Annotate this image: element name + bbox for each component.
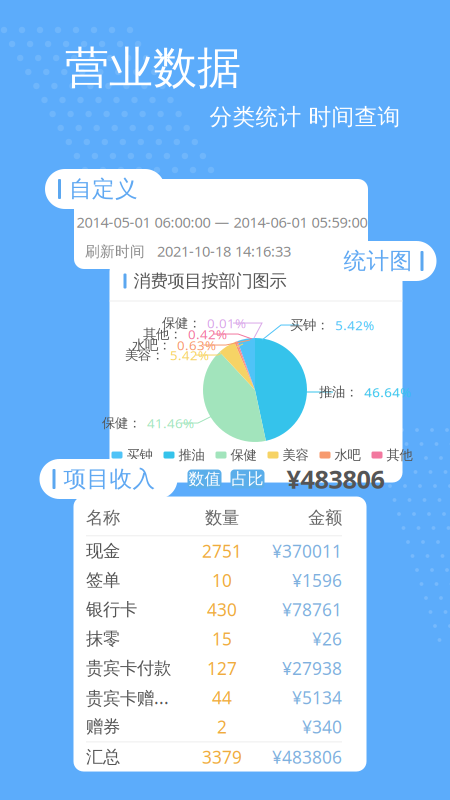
staticText: 水吧 [334, 447, 360, 463]
staticText: 水吧： [132, 337, 171, 353]
staticText: 5.42% [170, 346, 209, 364]
staticText: 刷新时间 2021-10-18 14:16:33 [85, 241, 291, 261]
staticText: 自定义 [69, 175, 138, 203]
button[interactable]: 占比 [230, 469, 264, 488]
staticText: 2751 [202, 539, 242, 562]
staticText: 分类统计 时间查询 [209, 103, 400, 131]
staticText: 3379 [202, 745, 242, 768]
staticText: 美容： [125, 347, 164, 363]
staticText: 买钟 [126, 447, 152, 463]
staticText: ¥26 [312, 627, 342, 650]
staticText: 统计图 [343, 247, 412, 275]
staticText: 5.42% [335, 316, 374, 334]
staticText: 其他 [386, 447, 412, 463]
staticText: 保健 [230, 447, 256, 463]
staticText: ¥483806 [286, 462, 384, 496]
button[interactable]: 项目收入 [39, 459, 177, 499]
staticText: 赠券 [86, 716, 120, 737]
staticText: 项目收入 [63, 465, 155, 493]
staticText: 2 [217, 715, 227, 738]
staticText: ¥340 [302, 715, 342, 738]
staticText: 美容 [282, 447, 308, 463]
staticText: 46.64% [364, 383, 411, 401]
button[interactable]: 统计图 [317, 241, 436, 281]
staticText: ¥5134 [292, 686, 342, 709]
staticText: 占比 [231, 469, 263, 489]
staticText: ¥1596 [292, 569, 342, 592]
staticText: 推油： [319, 384, 358, 400]
staticText: 贵宾卡付款 [86, 657, 171, 679]
staticText: 抹零 [86, 628, 120, 649]
staticText: 消费项目按部门图示 [133, 270, 286, 292]
staticText: 41.46% [147, 414, 194, 432]
staticText: 430 [207, 598, 237, 621]
staticText: ¥370011 [272, 539, 342, 562]
staticText: 签单 [86, 570, 120, 591]
staticText: 金额 [308, 507, 342, 528]
staticText: ¥483806 [272, 745, 342, 768]
staticText: 贵宾卡赠送... [86, 686, 182, 709]
staticText: ¥27938 [282, 657, 342, 680]
staticText: 0.42% [188, 325, 227, 343]
staticText: 汇总 [86, 746, 120, 768]
staticText: 2014-05-01 06:00:00 — 2014-06-01 05:59:0… [76, 212, 367, 232]
staticText: 数量 [205, 507, 239, 528]
staticText: 其他： [143, 326, 182, 342]
staticText: 0.63% [177, 336, 216, 354]
staticText: 保健： [102, 415, 141, 431]
button[interactable]: 自定义 [45, 169, 165, 209]
staticText: 44 [212, 686, 232, 709]
staticText: 现金 [86, 540, 120, 562]
staticText: 银行卡 [86, 599, 137, 620]
staticText: ¥78761 [282, 598, 342, 621]
staticText: 127 [207, 657, 237, 680]
staticText: 买钟： [290, 317, 329, 333]
staticText: 15 [212, 627, 232, 650]
staticText: 名称 [86, 507, 120, 528]
staticText: 0.01% [207, 314, 246, 332]
staticText: 营业数据 [65, 41, 241, 95]
staticText: 数值 [188, 469, 220, 489]
staticText: 10 [212, 569, 232, 592]
button[interactable]: 数值 [187, 469, 221, 488]
staticText: 保健： [162, 315, 201, 331]
staticText: 推油 [178, 447, 204, 463]
